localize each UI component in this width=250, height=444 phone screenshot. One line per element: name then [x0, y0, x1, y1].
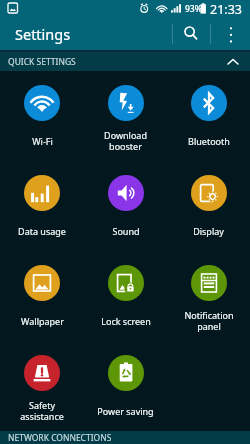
- staticText: Settings: [15, 24, 71, 44]
- button[interactable]: Data usage: [0, 161, 84, 251]
- button[interactable]: Download booster: [84, 71, 167, 161]
- staticText: 21:33: [210, 1, 242, 18]
- button[interactable]: Search: [174, 17, 210, 53]
- staticText: QUICK SETTINGS: [8, 56, 76, 68]
- staticText: Power saving: [97, 405, 154, 417]
- staticText: Wi-Fi: [32, 135, 53, 147]
- button[interactable]: Safety assistance: [0, 341, 84, 431]
- button[interactable]: Lock screen: [84, 251, 167, 341]
- button[interactable]: Wallpaper: [0, 251, 84, 341]
- staticText: Bluetooth: [188, 135, 230, 147]
- staticText: Wallpaper: [21, 315, 64, 327]
- staticText: Data usage: [18, 225, 66, 237]
- button[interactable]: Notification panel: [167, 251, 250, 341]
- staticText: Sound: [112, 225, 140, 237]
- staticText: Lock screen: [101, 315, 151, 327]
- staticText: Download booster: [104, 129, 147, 153]
- staticText: Display: [193, 225, 224, 237]
- button[interactable]: Power saving: [84, 341, 167, 431]
- button[interactable]: QUICK SETTINGS: [0, 52, 250, 71]
- button[interactable]: NETWORK CONNECTIONS: [0, 431, 250, 444]
- button[interactable]: Bluetooth: [167, 71, 250, 161]
- staticText: Safety assistance: [20, 399, 64, 423]
- staticText: Notification panel: [184, 309, 234, 333]
- button[interactable]: Wi-Fi: [0, 71, 84, 161]
- button[interactable]: Sound: [84, 161, 167, 251]
- staticText: 93%: [185, 3, 202, 15]
- button[interactable]: More options: [213, 17, 249, 53]
- button[interactable]: Display: [167, 161, 250, 251]
- staticText: NETWORK CONNECTIONS: [8, 432, 112, 444]
